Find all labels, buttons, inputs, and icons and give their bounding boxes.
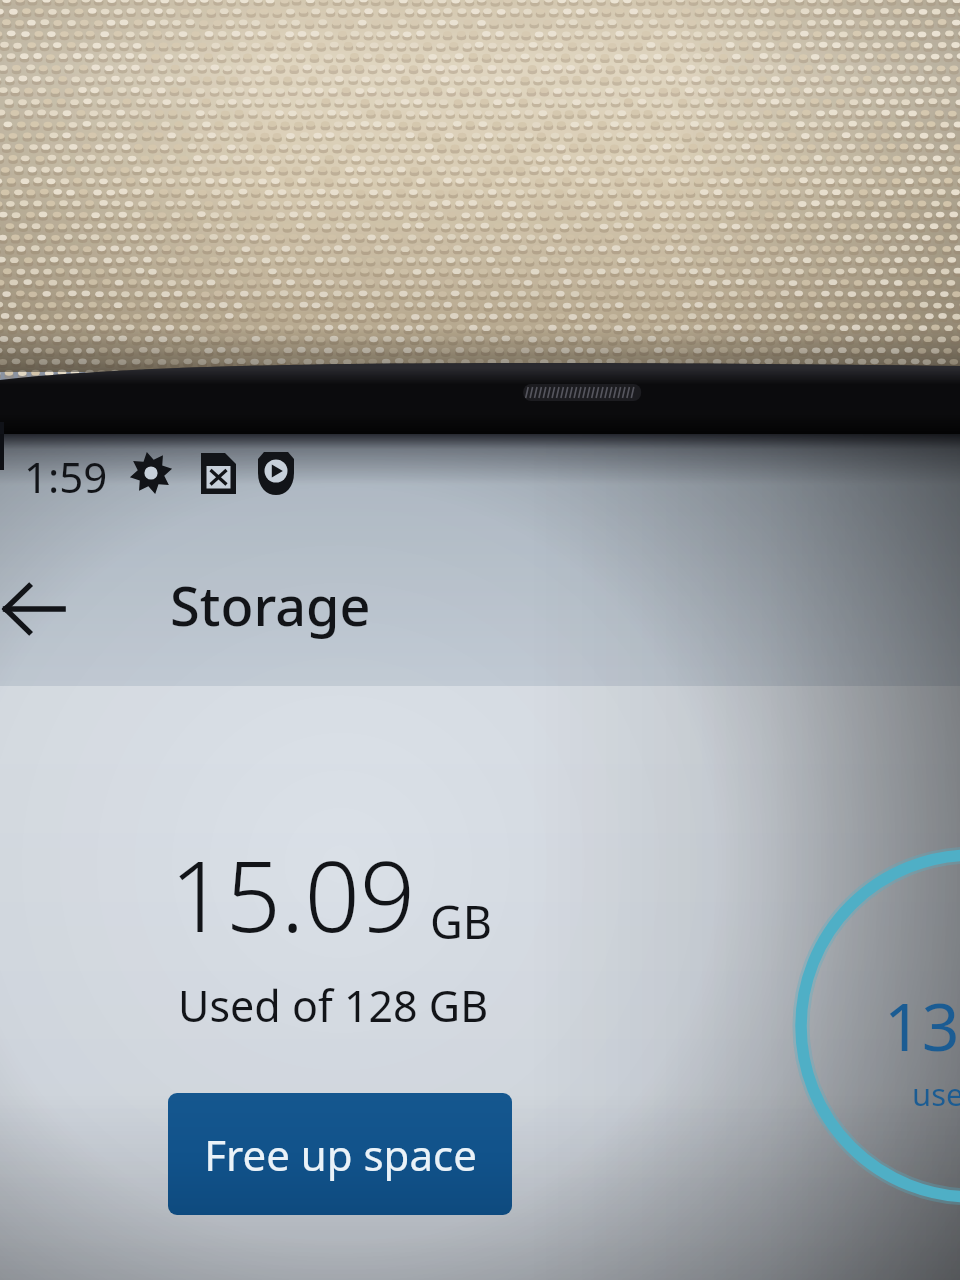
staticText: GB (430, 891, 493, 952)
staticText: 13 (884, 980, 960, 1070)
staticText: 1:59 (24, 448, 108, 505)
staticText: used (912, 1073, 960, 1115)
button[interactable]: Back (0, 556, 86, 662)
staticText: Free up space (204, 1126, 477, 1183)
staticText: 15.09 (170, 828, 416, 960)
button[interactable]: Free up space (168, 1093, 512, 1215)
staticText: Used of 128 GB (178, 976, 489, 1035)
staticText: Storage (170, 568, 371, 642)
